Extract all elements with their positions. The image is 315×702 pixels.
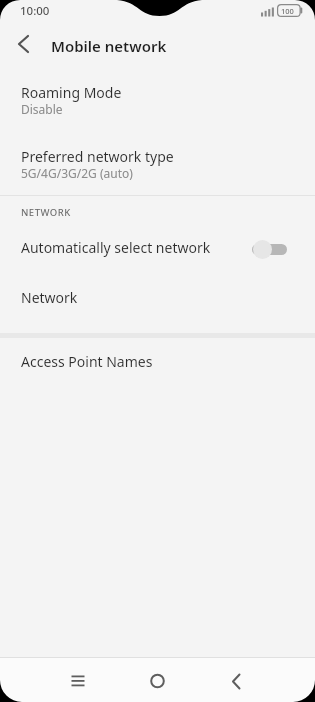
button[interactable] <box>6 30 34 58</box>
button[interactable]: Preferred network type <box>0 134 315 195</box>
staticText: 100 <box>281 6 294 16</box>
staticText: Access Point Names <box>21 352 153 371</box>
button[interactable]: Roaming Mode <box>0 70 315 132</box>
button[interactable] <box>215 660 255 700</box>
button[interactable]: Network <box>0 280 315 322</box>
staticText: Automatically select network <box>21 238 211 257</box>
staticText: Disable <box>21 101 63 117</box>
staticText: 5G/4G/3G/2G (auto) <box>21 165 133 181</box>
staticText: Roaming Mode <box>21 83 122 102</box>
button[interactable]: Access Point Names <box>0 344 315 384</box>
staticText: NETWORK <box>21 206 71 219</box>
button[interactable]: Automatically select network <box>0 226 315 272</box>
staticText: Mobile network <box>51 36 167 56</box>
staticText: 10:00 <box>20 3 50 19</box>
staticText: Network <box>21 288 78 307</box>
button[interactable] <box>137 660 177 700</box>
staticText: Preferred network type <box>21 147 174 166</box>
button[interactable] <box>58 660 98 700</box>
